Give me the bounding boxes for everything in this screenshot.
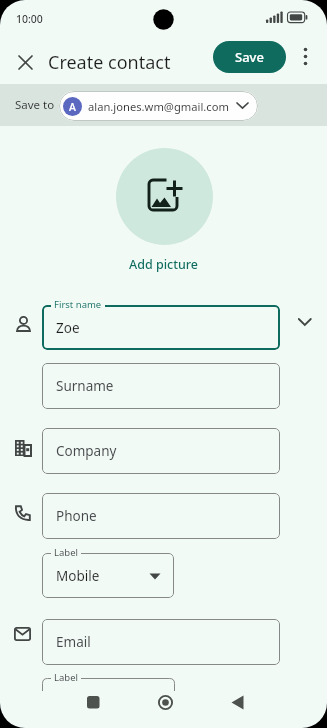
staticText: 10:00 — [16, 12, 43, 26]
staticText: Create contact — [48, 50, 171, 75]
staticText: Label — [54, 671, 78, 684]
staticText: Save to — [15, 97, 55, 113]
staticText: Company — [56, 442, 117, 460]
staticText: Mobile — [56, 567, 100, 585]
staticText: alan.jones.wm@gmail.com — [88, 99, 229, 114]
button[interactable] — [116, 148, 213, 245]
staticText: Email — [56, 633, 91, 651]
staticText: Zoe — [56, 319, 80, 337]
staticText: A — [69, 100, 76, 114]
staticText: Phone — [56, 507, 97, 525]
button[interactable]: Email — [42, 619, 280, 665]
staticText: Label — [54, 546, 78, 559]
button[interactable]: Mobile — [42, 553, 174, 598]
button[interactable] — [293, 42, 323, 72]
button[interactable]: Save — [213, 41, 286, 73]
button[interactable]: A — [59, 91, 258, 121]
button[interactable] — [290, 310, 320, 340]
button[interactable] — [146, 690, 184, 716]
button[interactable] — [218, 690, 256, 716]
button[interactable]: Company — [42, 428, 280, 474]
staticText: Add picture — [129, 256, 199, 273]
button[interactable]: Surname — [42, 363, 280, 409]
button[interactable]: Zoe — [42, 305, 280, 350]
button[interactable]: Phone — [42, 493, 280, 539]
button[interactable] — [75, 690, 113, 716]
staticText: Save — [235, 48, 264, 66]
button[interactable] — [10, 47, 40, 77]
staticText: First name — [54, 298, 102, 311]
staticText: Surname — [56, 377, 114, 395]
